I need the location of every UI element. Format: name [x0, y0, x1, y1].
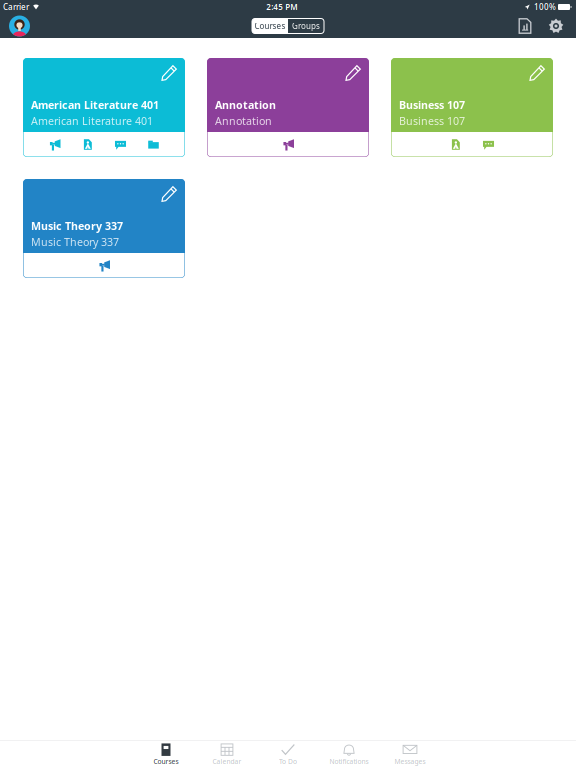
staticText: Music Theory 337 — [31, 219, 123, 233]
button[interactable] — [87, 253, 120, 277]
staticText: 2:45 PM — [266, 2, 297, 12]
button[interactable]: Grades — [518, 18, 532, 34]
staticText: American Literature 401 — [31, 98, 159, 112]
button[interactable]: Settings — [548, 18, 564, 34]
button[interactable] — [104, 132, 137, 156]
staticText: Notifications — [329, 757, 368, 766]
button[interactable]: Edit course nickname — [345, 58, 369, 81]
button[interactable]: Business 107 — [391, 58, 553, 157]
button[interactable]: Edit course nickname — [161, 58, 185, 81]
staticText: Courses — [153, 757, 178, 766]
button[interactable]: Calendar — [196, 741, 257, 768]
button[interactable]: Groups — [288, 18, 324, 33]
button[interactable] — [271, 132, 304, 156]
button[interactable]: Courses — [252, 18, 288, 33]
button[interactable] — [38, 132, 71, 156]
button[interactable]: Edit course nickname — [161, 179, 185, 202]
staticText: To Do — [279, 757, 297, 766]
staticText: Groups — [292, 21, 320, 31]
button[interactable] — [137, 132, 170, 156]
staticText: Business 107 — [399, 98, 465, 112]
staticText: Business 107 — [399, 114, 465, 128]
button[interactable]: Edit course nickname — [529, 58, 553, 81]
button[interactable]: Music Theory 337 — [23, 179, 185, 278]
button[interactable]: To Do — [257, 741, 318, 768]
button[interactable]: Courses — [135, 741, 196, 768]
button[interactable]: American Literature 401 — [23, 58, 185, 157]
button[interactable] — [472, 132, 505, 156]
staticText: American Literature 401 — [31, 114, 153, 128]
staticText: Annotation — [215, 114, 272, 128]
button[interactable]: Profile — [9, 15, 30, 36]
button[interactable] — [71, 132, 104, 156]
button[interactable]: Messages — [379, 741, 440, 768]
button[interactable]: Annotation — [207, 58, 369, 157]
staticText: Music Theory 337 — [31, 235, 119, 249]
button[interactable]: Notifications — [318, 741, 379, 768]
staticText: 100% — [534, 2, 556, 12]
staticText: Courses — [254, 21, 285, 31]
staticText: Calendar — [212, 757, 241, 766]
staticText: Messages — [394, 757, 425, 766]
staticText: Annotation — [215, 98, 276, 112]
staticText: Carrier — [3, 2, 29, 12]
button[interactable] — [439, 132, 472, 156]
